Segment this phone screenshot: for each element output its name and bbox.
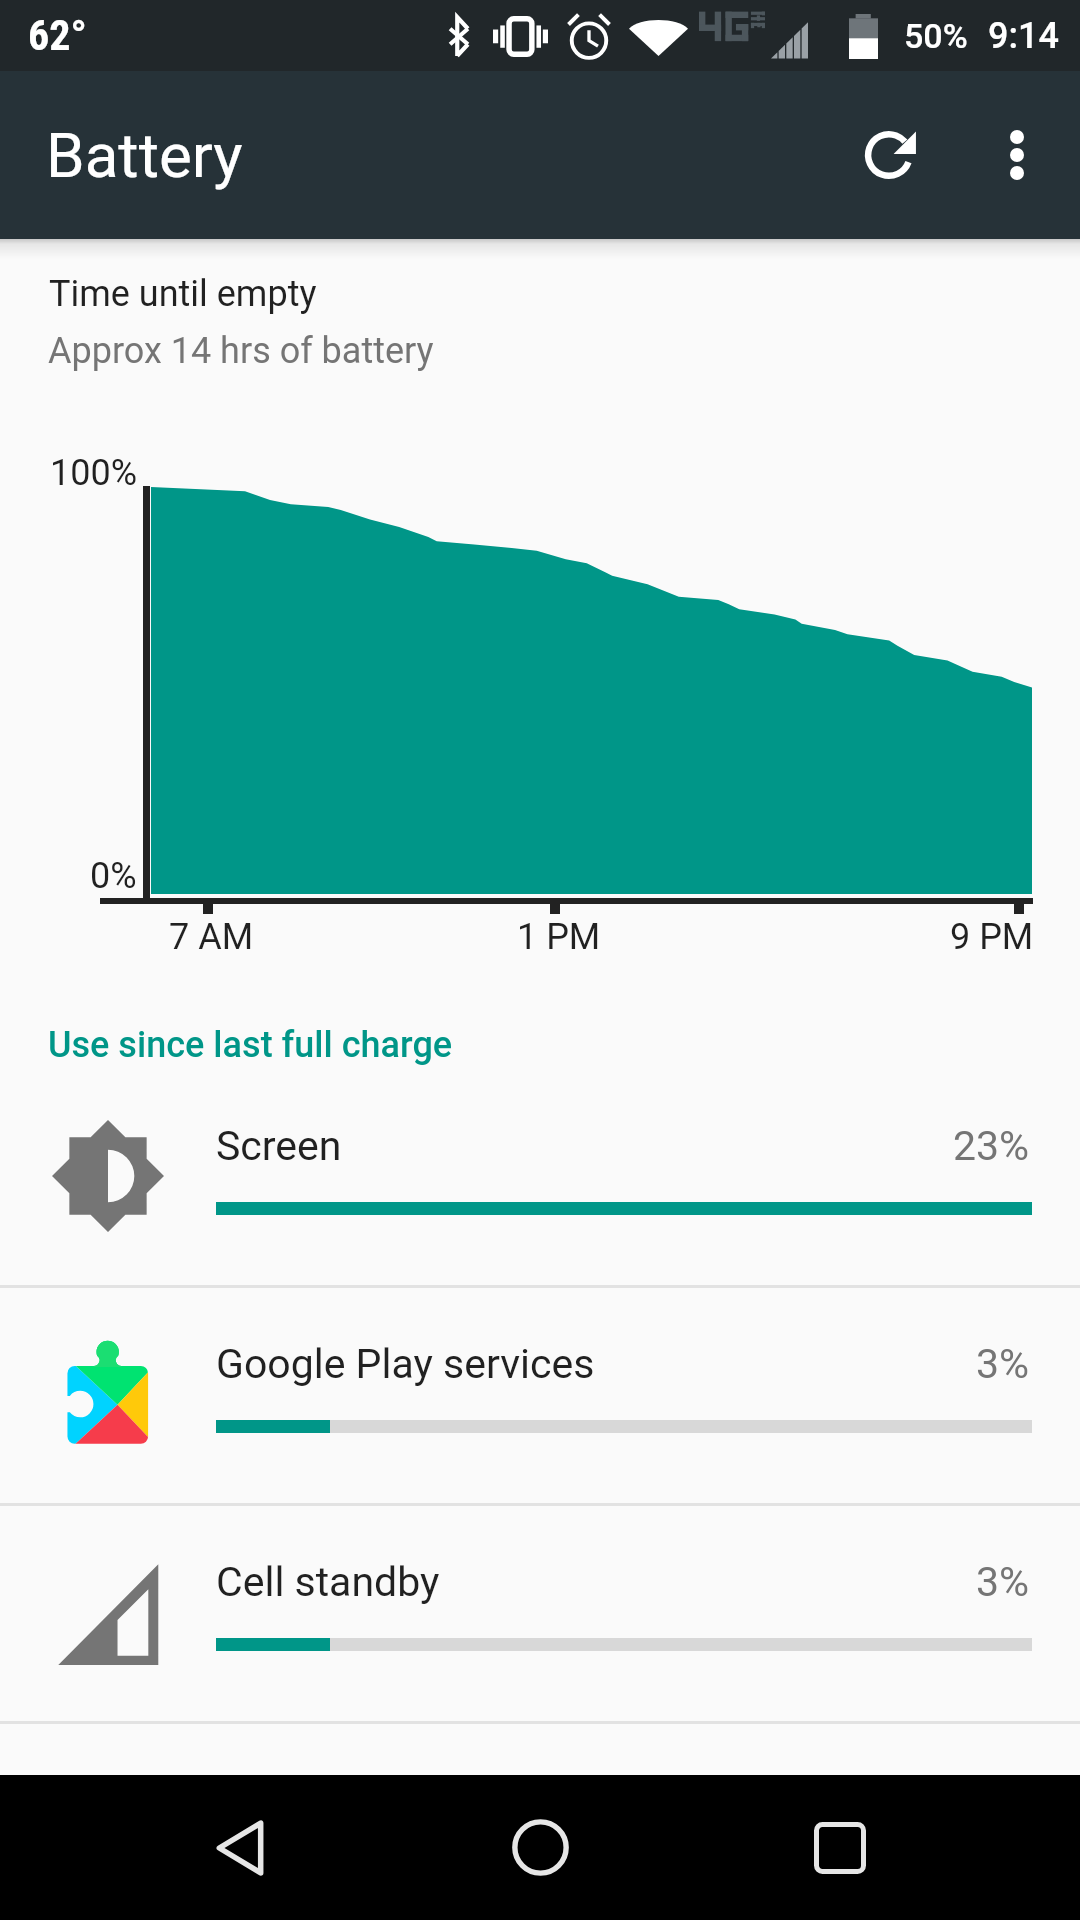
staticText: 0%: [90, 855, 137, 897]
staticText: 50%: [904, 16, 968, 56]
staticText: Cell standby: [216, 1558, 440, 1606]
staticText: 9:14: [988, 15, 1059, 57]
button[interactable]: Recents: [750, 1775, 930, 1920]
staticText: 3%: [976, 1340, 1030, 1388]
button[interactable]: Screen: [0, 1067, 1080, 1285]
staticText: Time until empty: [49, 273, 317, 315]
staticText: 62°: [28, 11, 87, 60]
staticText: Google Play services: [216, 1340, 595, 1388]
button[interactable]: Back: [150, 1775, 330, 1920]
staticText: Battery: [46, 119, 243, 192]
button[interactable]: More options: [954, 71, 1080, 239]
staticText: Approx 14 hrs of battery: [48, 330, 434, 372]
staticText: 23%: [953, 1122, 1030, 1170]
staticText: 7 AM: [169, 916, 254, 958]
staticText: Use since last full charge: [48, 1024, 453, 1066]
staticText: Screen: [216, 1122, 342, 1170]
button[interactable]: Google Play services: [0, 1285, 1080, 1503]
staticText: 3%: [976, 1558, 1030, 1606]
staticText: 100%: [50, 452, 138, 494]
staticText: 9 PM: [950, 916, 1034, 958]
button[interactable]: Cell standby: [0, 1503, 1080, 1721]
button[interactable]: Home: [450, 1775, 630, 1920]
staticText: 1 PM: [517, 916, 601, 958]
button[interactable]: Refresh: [828, 71, 954, 239]
